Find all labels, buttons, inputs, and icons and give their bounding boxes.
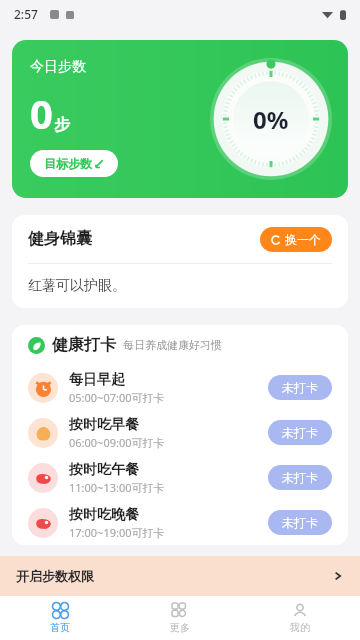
button[interactable]: 换一个 [260,227,332,252]
staticText: 06:00~09:00可打卡 [69,435,165,450]
staticText: 今日步数 [30,58,86,76]
staticText: 未打卡 [282,470,318,485]
button[interactable]: 未打卡 [268,465,332,490]
staticText: 按时吃午餐 [69,461,139,479]
button[interactable]: 目标步数 [30,150,118,177]
button[interactable]: 未打卡 [268,420,332,445]
staticText: 2:57 [14,6,38,22]
staticText: 首页 [50,621,70,634]
staticText: 更多 [170,621,190,634]
staticText: 健身锦囊 [28,229,92,249]
button[interactable]: 每日早起 [12,365,348,410]
button[interactable]: 开启步数权限 [0,556,360,596]
staticText: 未打卡 [282,380,318,395]
button[interactable]: 今日步数 [12,40,348,198]
staticText: 按时吃早餐 [69,416,139,434]
button[interactable]: 我的 [240,596,360,640]
staticText: 按时吃晚餐 [69,506,139,524]
staticText: 开启步数权限 [16,568,94,584]
button[interactable]: 按时吃午餐 [12,455,348,500]
staticText: 每日养成健康好习惯 [123,338,222,352]
staticText: 健康打卡 [52,335,116,355]
staticText: 换一个 [285,232,321,247]
button[interactable]: 未打卡 [268,375,332,400]
staticText: 红薯可以护眼。 [28,277,126,295]
staticText: 未打卡 [282,425,318,440]
button[interactable]: 健身锦囊 [12,215,348,308]
staticText: 步 [54,115,70,135]
staticText: 0% [253,103,289,136]
button[interactable]: 按时吃晚餐 [12,500,348,545]
staticText: 未打卡 [282,515,318,530]
button[interactable]: 按时吃早餐 [12,410,348,455]
staticText: 目标步数 [44,156,92,171]
staticText: 每日早起 [69,371,125,389]
button[interactable]: 更多 [120,596,240,640]
staticText: 05:00~07:00可打卡 [69,390,165,405]
staticText: 11:00~13:00可打卡 [69,480,165,495]
staticText: 0 [30,86,53,140]
button[interactable]: 未打卡 [268,510,332,535]
button[interactable]: 首页 [0,596,120,640]
staticText: 17:00~19:00可打卡 [69,525,165,540]
staticText: 我的 [290,621,310,634]
